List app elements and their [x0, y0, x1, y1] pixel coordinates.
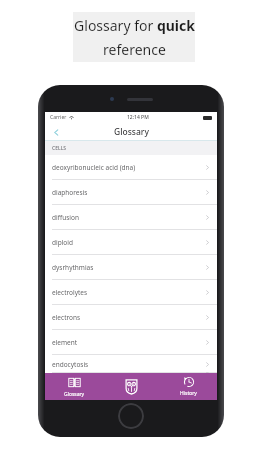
button[interactable]: Back: [49, 125, 63, 139]
button[interactable]: diaphoresis: [45, 180, 217, 205]
button[interactable]: diploid: [45, 230, 217, 255]
staticText: endocytosis: [52, 360, 89, 369]
staticText: reference: [103, 40, 166, 59]
staticText: Glossary: [64, 391, 85, 398]
button[interactable]: endocytosis: [45, 355, 217, 373]
staticText: Carrier: [50, 114, 67, 121]
button[interactable]: deoxyribonucleic acid (dna): [45, 155, 217, 180]
staticText: History: [180, 390, 197, 397]
button[interactable]: element: [45, 330, 217, 355]
button[interactable]: Home: [118, 403, 144, 429]
button[interactable]: diffusion: [45, 205, 217, 230]
button[interactable]: Glossary: [45, 373, 103, 400]
staticText: electrolytes: [52, 288, 88, 297]
button[interactable]: electrons: [45, 305, 217, 330]
staticText: dysrhythmias: [52, 263, 94, 272]
button[interactable]: History: [160, 373, 217, 400]
staticText: diploid: [52, 238, 73, 247]
staticText: deoxyribonucleic acid (dna): [52, 163, 136, 172]
staticText: Glossary: [114, 126, 149, 138]
staticText: Glossary for quick: [74, 16, 195, 35]
staticText: element: [52, 338, 78, 347]
staticText: 12:14 PM: [127, 114, 149, 121]
button[interactable]: dysrhythmias: [45, 255, 217, 280]
button[interactable]: electrolytes: [45, 280, 217, 305]
staticText: electrons: [52, 313, 81, 322]
staticText: CELLS: [52, 145, 67, 152]
button[interactable]: Home: [103, 373, 160, 400]
staticText: diaphoresis: [52, 188, 88, 197]
staticText: diffusion: [52, 213, 79, 222]
